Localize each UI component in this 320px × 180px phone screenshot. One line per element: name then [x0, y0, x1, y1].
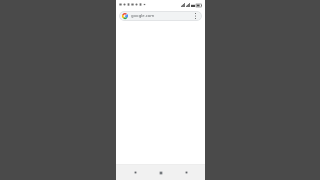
button[interactable]: Back — [129, 166, 142, 179]
button[interactable]: Home — [154, 166, 167, 179]
button[interactable]: Recent apps — [180, 166, 193, 179]
button[interactable]: More options — [191, 12, 199, 20]
staticText: google.com — [131, 13, 191, 19]
button[interactable]: google.com — [119, 11, 202, 21]
